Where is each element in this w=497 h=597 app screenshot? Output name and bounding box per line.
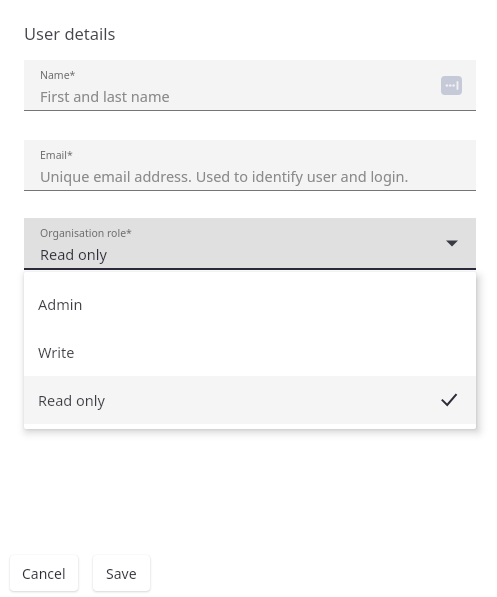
staticText: Read only: [40, 244, 107, 264]
button[interactable]: Open dropdown: [442, 233, 462, 253]
button[interactable]: Read only: [24, 376, 476, 424]
button[interactable]: Name*: [24, 60, 476, 112]
staticText: Email*: [40, 148, 73, 162]
staticText: First and last name: [40, 86, 170, 106]
staticText: Cancel: [22, 564, 66, 583]
button[interactable]: Admin: [24, 280, 476, 328]
button[interactable]: Autofill: [441, 76, 462, 95]
button[interactable]: Write: [24, 328, 476, 376]
staticText: Admin: [38, 294, 83, 314]
staticText: Read only: [38, 390, 105, 410]
staticText: User details: [24, 22, 116, 44]
staticText: Unique email address. Used to identify u…: [40, 166, 409, 186]
staticText: Name*: [40, 68, 76, 82]
button[interactable]: Email*: [24, 140, 476, 192]
staticText: Write: [38, 342, 75, 362]
staticText: Save: [106, 564, 137, 583]
button[interactable]: Cancel: [10, 555, 78, 591]
button[interactable]: Save: [93, 555, 150, 591]
button[interactable]: Organisation role*: [24, 218, 476, 270]
staticText: Organisation role*: [40, 226, 132, 240]
